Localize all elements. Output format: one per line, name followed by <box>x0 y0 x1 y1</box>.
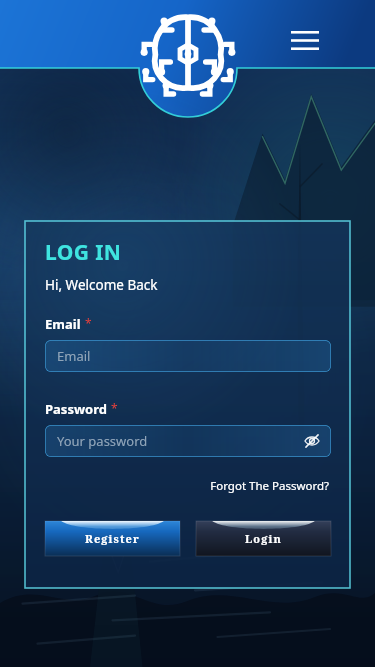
button[interactable]: Open menu <box>285 20 325 60</box>
button[interactable]: Forgot The Password? <box>208 475 331 497</box>
staticText: Your password <box>57 432 148 450</box>
button[interactable]: Login <box>196 521 331 556</box>
button[interactable]: Show password <box>301 430 323 452</box>
staticText: * <box>85 315 92 331</box>
staticText: * <box>111 400 118 416</box>
staticText: Email <box>45 315 81 333</box>
staticText: Password <box>45 400 107 418</box>
staticText: LOG IN <box>45 238 122 267</box>
staticText: Register <box>85 531 140 546</box>
other: App logo <box>148 14 228 94</box>
button[interactable]: Email <box>45 340 331 372</box>
staticText: Login <box>245 531 282 546</box>
button[interactable]: Register <box>45 521 180 556</box>
staticText: Forgot The Password? <box>210 478 329 494</box>
staticText: Email <box>57 347 91 365</box>
staticText: Hi, Welcome Back <box>45 276 158 294</box>
button[interactable]: Your password <box>45 425 331 457</box>
